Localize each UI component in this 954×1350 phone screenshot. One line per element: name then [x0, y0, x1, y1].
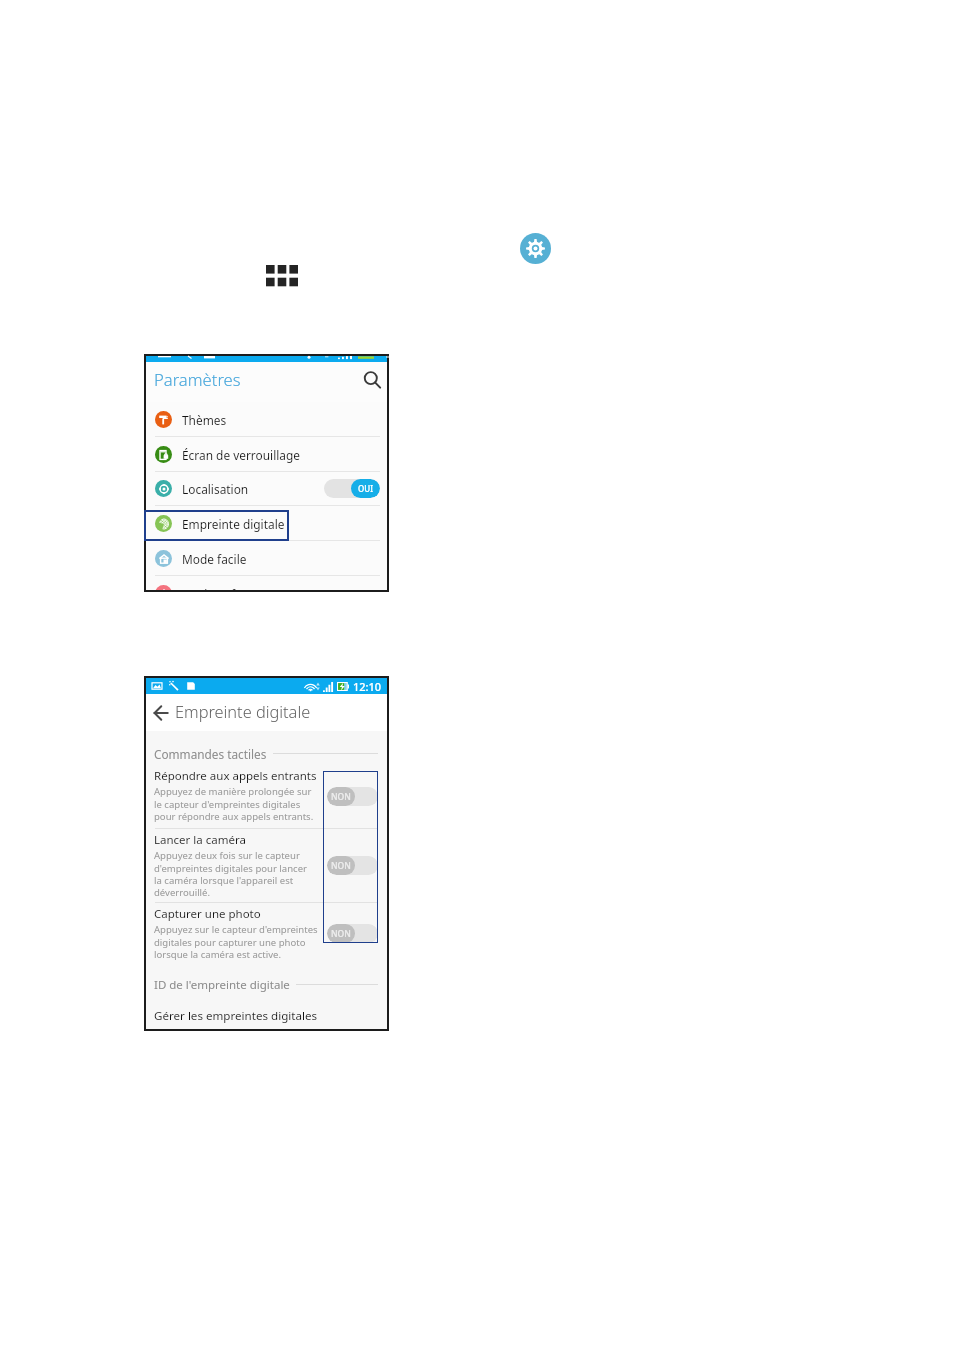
button[interactable]: Mode facile — [146, 541, 387, 576]
staticText: Répondre aux appels entrants — [154, 768, 317, 784]
staticText: NON — [331, 928, 351, 940]
staticText: Commandes tactiles — [154, 746, 267, 762]
button[interactable]: Localisation — [146, 471, 387, 506]
button[interactable]: Gérer les empreintes digitales — [146, 996, 387, 1029]
button[interactable]: Répondre aux appels entrants — [146, 765, 387, 829]
staticText: Paramètres — [154, 368, 241, 391]
button[interactable]: Empreinte digitale — [146, 506, 387, 541]
button[interactable]: All apps — [266, 265, 299, 288]
staticText: Capturer une photo — [154, 906, 261, 922]
staticText: Appuyez de manière prolongée sur le capt… — [154, 785, 314, 822]
button[interactable]: NON — [327, 924, 378, 943]
button[interactable]: Capturer une photo — [146, 903, 387, 965]
button[interactable]: Thèmes — [146, 402, 387, 437]
button[interactable]: NON — [327, 856, 378, 875]
staticText: Lancer la caméra — [154, 832, 246, 848]
staticText: Mode facile — [182, 551, 247, 567]
staticText: Gérer les empreintes digitales — [154, 1008, 318, 1024]
staticText: Empreinte digitale — [175, 701, 311, 723]
staticText: Empreinte digitale — [182, 516, 285, 532]
staticText: OUI — [358, 483, 374, 494]
button[interactable]: NON — [327, 787, 378, 806]
staticText: NON — [331, 860, 351, 872]
staticText: NON — [331, 791, 351, 803]
button[interactable]: Lancer la caméra — [146, 829, 387, 903]
button[interactable]: Search — [361, 369, 383, 391]
staticText: Thèmes — [182, 412, 227, 428]
button[interactable]: Settings — [520, 233, 551, 264]
staticText: Mode Enfant — [182, 586, 254, 590]
staticText: 12:10 — [353, 679, 382, 694]
staticText: Appuyez sur le capteur d'empreintes digi… — [154, 923, 318, 960]
button[interactable]: OUI — [324, 479, 380, 498]
staticText: Localisation — [182, 481, 249, 497]
button[interactable]: Mode Enfant — [146, 576, 387, 590]
staticText: ID de l'empreinte digitale — [154, 977, 290, 993]
button[interactable]: Écran de verrouillage — [146, 437, 387, 472]
staticText: Appuyez deux fois sur le capteur d'empre… — [154, 849, 307, 898]
button[interactable]: Back — [152, 704, 169, 721]
staticText: Écran de verrouillage — [182, 447, 300, 463]
